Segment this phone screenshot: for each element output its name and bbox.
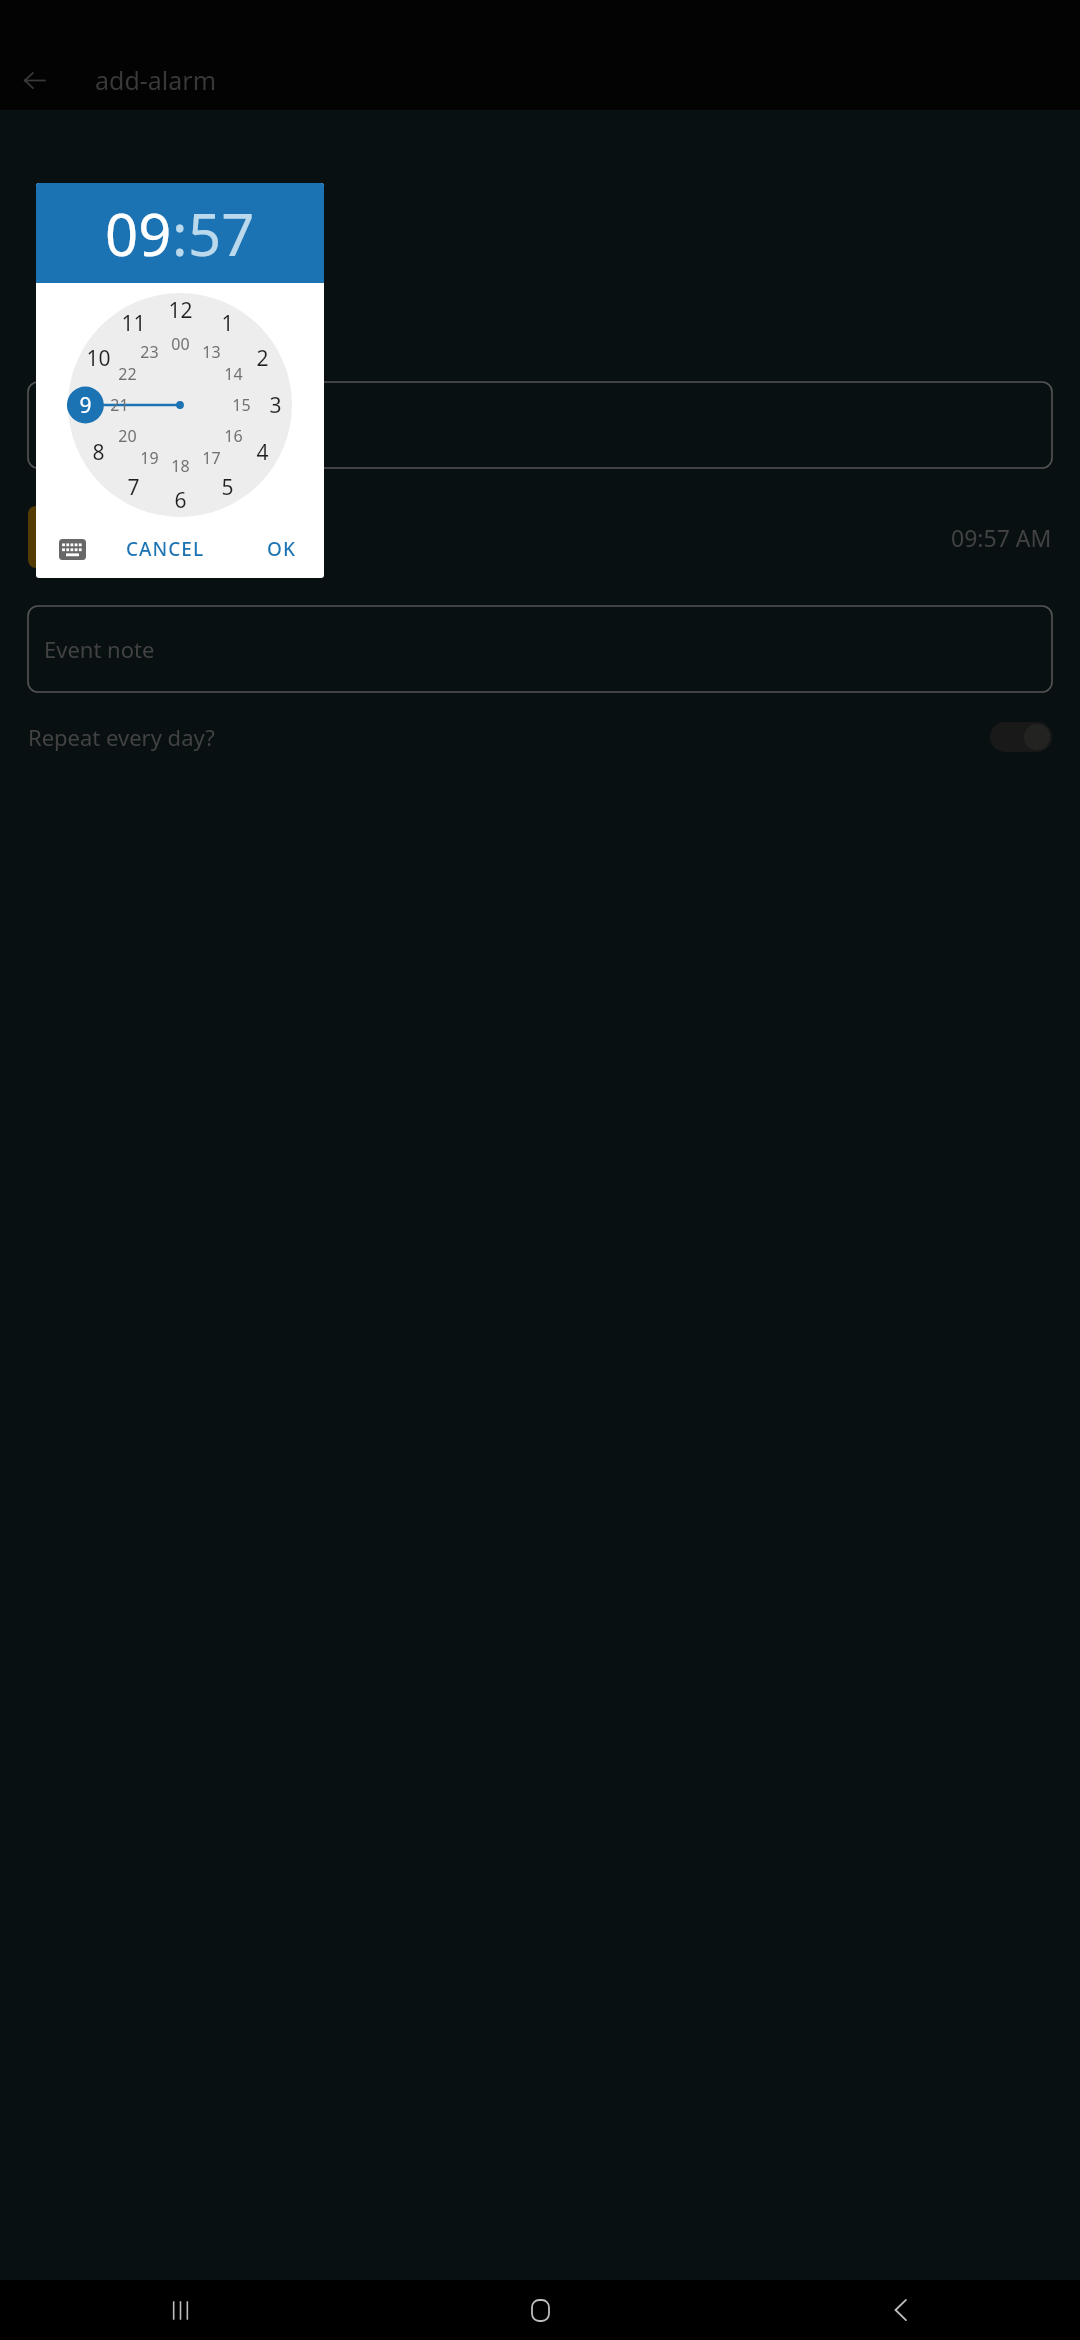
staticText: 11 <box>121 309 146 338</box>
button[interactable]: Back <box>720 2280 1080 2340</box>
button[interactable]: Back <box>10 56 58 104</box>
staticText: 3 <box>269 391 282 420</box>
staticText: Event name <box>50 410 172 440</box>
staticText: Event note <box>44 634 155 664</box>
staticText: Repeat every day? <box>28 722 215 752</box>
staticText: 23 <box>140 341 159 363</box>
staticText: 10 <box>86 344 111 373</box>
button[interactable]: 57 <box>188 194 255 273</box>
staticText: add-alarm <box>95 63 217 97</box>
staticText: OK <box>267 536 296 562</box>
staticText: 00 <box>171 333 190 355</box>
button[interactable]: CANCEL <box>116 528 215 570</box>
staticText: CANCEL <box>126 536 205 562</box>
staticText: 21 <box>110 394 129 416</box>
staticText: 09:57 AM <box>951 522 1052 553</box>
button[interactable]: Event name <box>28 382 1052 468</box>
staticText: 18 <box>171 455 190 477</box>
button[interactable]: 09 <box>105 194 172 273</box>
button[interactable]: Event note <box>28 606 1052 692</box>
staticText: 09 <box>105 194 172 273</box>
button[interactable]: Recent apps <box>0 2280 360 2340</box>
staticText: 6 <box>174 486 187 515</box>
staticText: 5 <box>221 473 234 502</box>
staticText: : <box>172 194 188 273</box>
staticText: 8 <box>92 438 105 467</box>
button[interactable]: 1 <box>68 293 292 517</box>
staticText: 15 <box>232 394 251 416</box>
staticText: 7 <box>127 473 140 502</box>
button[interactable] <box>28 506 148 568</box>
staticText: 13 <box>202 341 221 363</box>
button[interactable]: OK <box>257 528 306 570</box>
staticText: 17 <box>202 447 221 469</box>
staticText: 16 <box>224 425 243 447</box>
staticText: 4 <box>256 438 269 467</box>
staticText: 20 <box>118 425 137 447</box>
staticText: 1 <box>221 309 234 338</box>
button[interactable]: Home <box>360 2280 720 2340</box>
button[interactable]: Switch to keyboard input <box>52 529 92 569</box>
staticText: 57 <box>188 194 255 273</box>
button[interactable] <box>990 722 1052 752</box>
staticText: 19 <box>140 447 159 469</box>
staticText: 22 <box>118 363 137 385</box>
staticText: 14 <box>224 363 243 385</box>
staticText: 9 <box>79 391 92 420</box>
staticText: 12 <box>168 296 193 325</box>
staticText: 2 <box>256 344 269 373</box>
